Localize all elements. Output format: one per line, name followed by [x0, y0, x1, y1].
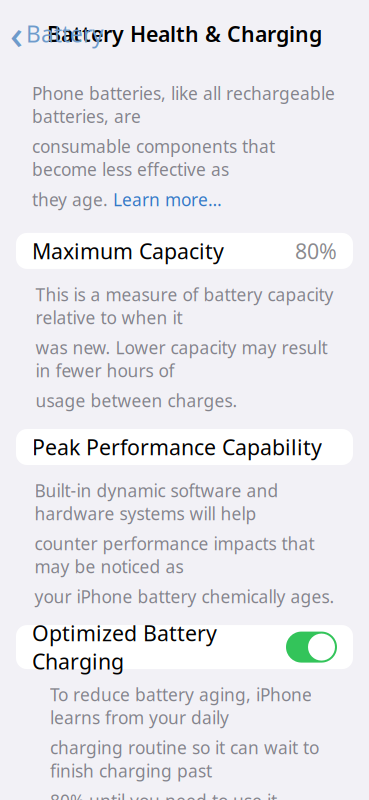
staticText: Peak Performance Capability	[32, 433, 322, 461]
staticText: Built-in dynamic software and hardware s…	[34, 479, 278, 525]
staticText: your iPhone battery chemically ages.	[34, 585, 334, 608]
staticText: ‹	[10, 7, 23, 60]
staticText: Learn more…	[113, 188, 222, 211]
staticText: Phone batteries, like all rechargeable b…	[32, 82, 335, 128]
staticText: charging routine so it can wait to finis…	[50, 736, 319, 782]
staticText: Maximum Capacity	[32, 237, 224, 265]
staticText: Battery Health & Charging	[47, 20, 322, 48]
staticText: 80% until you need to use it.	[50, 789, 282, 800]
button[interactable]: Maximum Capacity	[0, 233, 369, 269]
staticText: was new. Lower capacity may result in fe…	[35, 336, 327, 382]
staticText: This is a measure of battery capacity re…	[35, 283, 333, 329]
staticText: Optimized Battery Charging	[32, 619, 217, 675]
staticText: 80%	[295, 237, 337, 265]
staticText: they age.	[32, 188, 113, 211]
button[interactable]: Optimized Battery Charging	[0, 625, 369, 669]
button[interactable]: Peak Performance Capability	[0, 429, 369, 465]
staticText: counter performance impacts that may be …	[34, 532, 314, 578]
staticText: usage between charges.	[35, 389, 237, 412]
button[interactable]: ‹	[0, 13, 112, 55]
button[interactable]: Learn more…	[113, 188, 222, 211]
staticText: Battery	[26, 19, 104, 49]
staticText: consumable components that become less e…	[32, 135, 275, 181]
staticText: To reduce battery aging, iPhone learns f…	[50, 683, 312, 729]
